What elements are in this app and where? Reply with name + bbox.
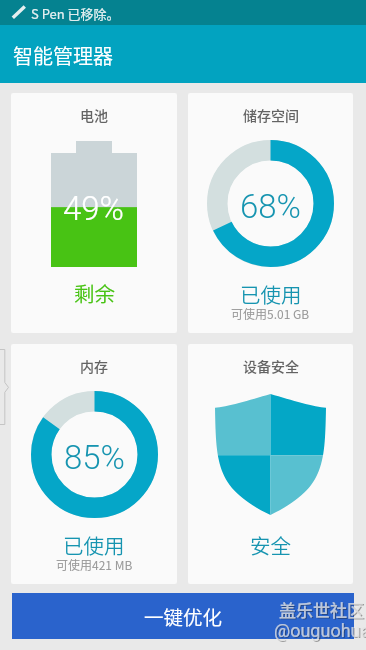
- staticText: 储存空间: [243, 105, 299, 125]
- staticText: 电池: [80, 105, 108, 125]
- staticText: 一键优化: [144, 602, 223, 630]
- staticText: 可使用421 MB: [56, 556, 133, 573]
- button[interactable]: 设备安全: [188, 344, 353, 584]
- staticText: 智能管理器: [13, 41, 113, 70]
- button[interactable]: 储存空间: [188, 93, 353, 333]
- staticText: 85%: [64, 438, 126, 477]
- staticText: 安全: [250, 530, 291, 560]
- staticText: 已使用: [240, 279, 302, 309]
- staticText: 可使用5.01 GB: [231, 305, 310, 322]
- staticText: 设备安全: [243, 356, 299, 376]
- button[interactable]: 内存: [11, 344, 177, 584]
- staticText: 68%: [240, 187, 302, 226]
- staticText: S Pen 已移除。: [31, 4, 120, 23]
- staticText: 已使用: [63, 530, 125, 560]
- staticText: 49%: [63, 189, 125, 228]
- staticText: 内存: [80, 356, 108, 376]
- staticText: 盖乐世社区: [279, 597, 364, 622]
- staticText: 剩余: [74, 278, 115, 308]
- button[interactable]: 一键优化: [12, 593, 354, 639]
- button[interactable]: 电池: [11, 93, 177, 333]
- staticText: @ouguohua: [274, 620, 366, 641]
